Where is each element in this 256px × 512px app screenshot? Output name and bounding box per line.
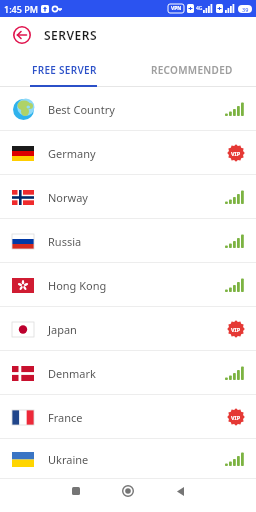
staticText: Germany — [48, 146, 96, 161]
staticText: VIP — [231, 150, 241, 157]
staticText: SERVERS — [44, 27, 98, 43]
staticText: Russia — [48, 234, 82, 249]
staticText: Norway — [48, 190, 88, 205]
button[interactable] — [65, 480, 87, 502]
staticText: RECOMMENDED — [151, 63, 233, 77]
button[interactable]: Russia — [0, 219, 256, 263]
staticText: Japan — [48, 322, 77, 337]
staticText: France — [48, 410, 83, 425]
staticText: Denmark — [48, 366, 96, 381]
button[interactable]: Norway — [0, 175, 256, 219]
button[interactable]: Hong Kong — [0, 263, 256, 307]
button[interactable]: Japan — [0, 307, 256, 351]
button[interactable]: Denmark — [0, 351, 256, 395]
button[interactable]: Germany — [0, 131, 256, 175]
button[interactable] — [12, 25, 32, 45]
button[interactable]: France — [0, 395, 256, 439]
button[interactable]: Ukraine — [0, 439, 256, 479]
staticText: VPN — [171, 5, 182, 12]
button[interactable] — [169, 480, 191, 502]
staticText: VIP — [231, 326, 241, 333]
staticText: Hong Kong — [48, 278, 107, 293]
button[interactable]: FREE SERVER — [0, 53, 128, 87]
button[interactable] — [117, 480, 139, 502]
button[interactable]: Best Country — [0, 87, 256, 131]
button[interactable]: RECOMMENDED — [128, 53, 256, 87]
staticText: 39 — [242, 6, 249, 13]
staticText: Best Country — [48, 102, 115, 117]
staticText: 1:45 PM — [4, 3, 38, 15]
staticText: 4G — [196, 5, 203, 12]
staticText: FREE SERVER — [32, 63, 97, 77]
staticText: Ukraine — [48, 452, 89, 467]
staticText: VIP — [231, 414, 241, 421]
